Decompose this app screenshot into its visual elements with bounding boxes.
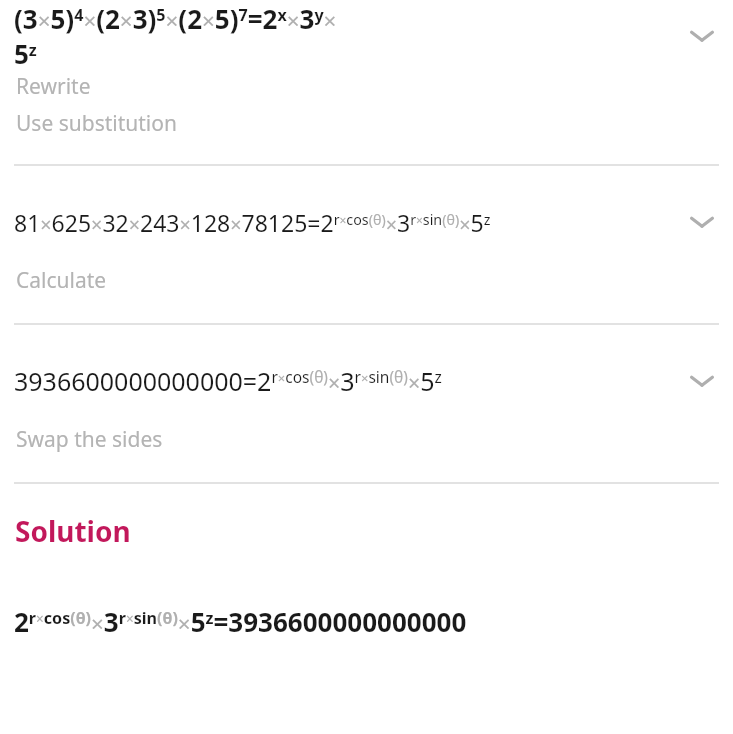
staticText: 3936600000000000=2r×cos(θ)×3r×sin(θ)×5z	[14, 364, 442, 398]
button[interactable]: 3936600000000000=2r×cos(θ)×3r×sin(θ)×5z	[0, 355, 733, 407]
button[interactable]: Use substitution	[16, 109, 177, 138]
button[interactable]: Swap the sides	[16, 425, 163, 454]
staticText: 81×625×32×243×128×78125=2r×cos(θ)×3r×sin…	[14, 207, 491, 238]
button[interactable]: Expand step	[679, 199, 725, 245]
staticText: 2r×cos(θ)×3r×sin(θ)×5z=3936600000000000	[14, 604, 467, 639]
button[interactable]: Expand step	[679, 358, 725, 404]
button[interactable]: (3×5)4×(2×3)5×(2×5)7=2x×3y×5z	[0, 0, 733, 72]
button[interactable]: Expand step	[679, 13, 725, 59]
staticText: (3×5)4×(2×3)5×(2×5)7=2x×3y×5z	[14, 1, 346, 71]
button[interactable]: Calculate	[16, 266, 107, 295]
button[interactable]: Rewrite	[16, 72, 91, 101]
staticText: Solution	[15, 512, 131, 550]
button[interactable]: 81×625×32×243×128×78125=2r×cos(θ)×3r×sin…	[0, 196, 733, 248]
